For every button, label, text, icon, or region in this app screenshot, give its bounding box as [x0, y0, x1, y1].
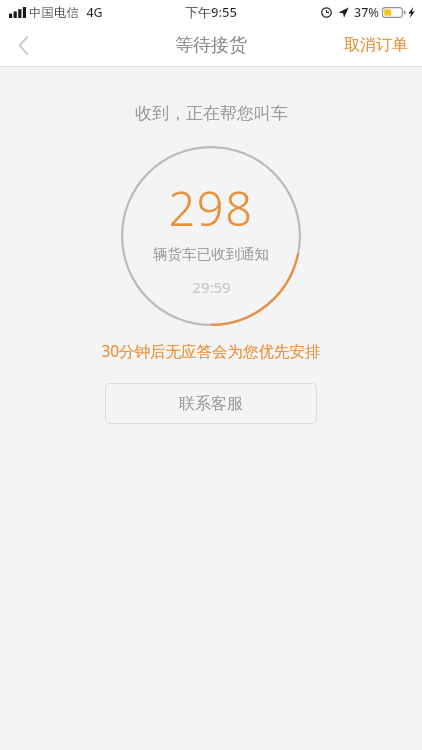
staticText: 下午9:55 [185, 3, 237, 21]
staticText: 298 [168, 176, 254, 240]
staticText: 29:59 [192, 277, 231, 297]
staticText: 联系客服 [179, 394, 243, 414]
staticText: 4G [86, 4, 103, 21]
button[interactable]: 取消订单 [330, 26, 422, 64]
button[interactable]: Back [0, 24, 46, 66]
staticText: 中国电信 [29, 5, 79, 21]
staticText: 30分钟后无应答会为您优先安排 [101, 340, 321, 361]
staticText: 37% [354, 4, 379, 21]
staticText: 等待接货 [175, 34, 247, 57]
staticText: 辆货车已收到通知 [153, 245, 269, 263]
staticText: 取消订单 [344, 35, 408, 55]
button[interactable]: 联系客服 [105, 383, 317, 424]
staticText: 收到，正在帮您叫车 [135, 103, 288, 124]
